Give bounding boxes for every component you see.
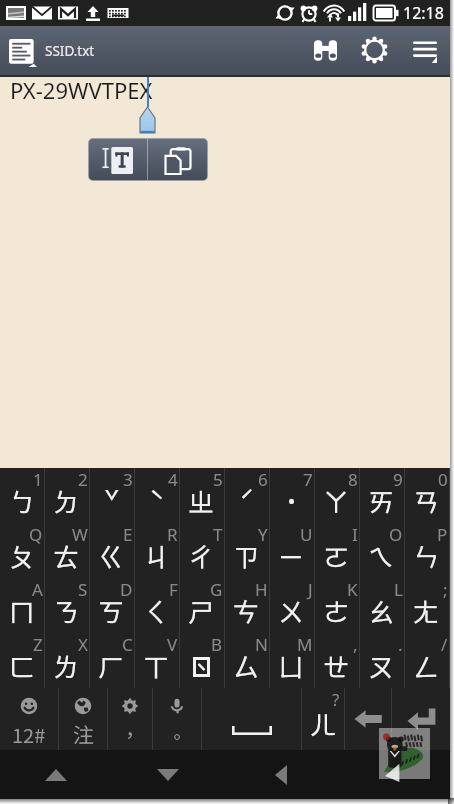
staticText: J [308, 578, 313, 601]
button[interactable]: 7 [269, 468, 314, 523]
staticText: ㄗ [233, 537, 260, 575]
button[interactable]: ? [302, 688, 344, 750]
button[interactable]: Select text [89, 139, 147, 180]
staticText: ; [443, 578, 448, 601]
button[interactable]: O [359, 523, 404, 578]
staticText: R [167, 523, 178, 546]
button[interactable]: Up [0, 750, 112, 799]
button[interactable]: 3 [89, 468, 134, 523]
staticText: P [437, 523, 448, 546]
button[interactable]: Enter [392, 688, 450, 750]
button[interactable]: Settings [108, 688, 152, 750]
button[interactable]: 4 [134, 468, 179, 523]
button[interactable]: 6 [224, 468, 269, 523]
button[interactable]: W [44, 523, 89, 578]
button[interactable]: ; [404, 578, 449, 633]
button[interactable]: Q [0, 523, 44, 578]
button[interactable]: V [134, 633, 179, 688]
staticText: V [167, 633, 178, 656]
staticText: ， [120, 720, 140, 749]
button[interactable]: J [269, 578, 314, 633]
button[interactable]: G [179, 578, 224, 633]
button[interactable]: . [359, 633, 404, 688]
button[interactable]: K [314, 578, 359, 633]
button[interactable]: / [404, 633, 449, 688]
button[interactable]: S [44, 578, 89, 633]
button[interactable]: Voice input [153, 688, 201, 750]
staticText: 12:18 [403, 2, 444, 24]
button[interactable]: I [314, 523, 359, 578]
button[interactable]: Backspace [345, 688, 391, 750]
button[interactable]: 2 [44, 468, 89, 523]
staticText: ㄝ [323, 647, 350, 685]
button[interactable]: 1 [0, 468, 44, 523]
button[interactable]: N [224, 633, 269, 688]
staticText: ㄜ [323, 592, 350, 630]
staticText: A [32, 578, 43, 601]
staticText: ㄍ [98, 537, 125, 575]
button[interactable]: R [134, 523, 179, 578]
staticText: ˊ [239, 482, 255, 520]
staticText: ㄨ [278, 592, 305, 630]
staticText: ㄔ [188, 537, 215, 575]
button[interactable]: 8 [314, 468, 359, 523]
button[interactable]: SSID.txt [8, 37, 99, 65]
staticText: 1 [33, 468, 43, 491]
staticText: S [78, 578, 88, 601]
staticText: Q [29, 523, 43, 546]
staticText: ? [332, 688, 340, 711]
button[interactable]: H [224, 578, 269, 633]
staticText: ㄈ [9, 647, 36, 685]
staticText: 注 [73, 719, 94, 749]
button[interactable]: Symbols [0, 688, 58, 750]
button[interactable]: P [404, 523, 449, 578]
staticText: M [297, 633, 313, 656]
button[interactable]: Input method [59, 688, 107, 750]
button[interactable]: , [314, 633, 359, 688]
button[interactable]: More options [402, 26, 448, 75]
button[interactable]: Y [224, 523, 269, 578]
button[interactable]: Paste [148, 139, 207, 180]
button[interactable]: M [269, 633, 314, 688]
button[interactable]: B [179, 633, 224, 688]
staticText: ㄘ [233, 592, 260, 630]
staticText: ㄌ [53, 647, 80, 685]
staticText: ㄋ [53, 592, 80, 630]
staticText: ㄓ [188, 482, 215, 520]
button[interactable]: 9 [359, 468, 404, 523]
staticText: ㄐ [143, 537, 170, 575]
button[interactable]: Settings [353, 26, 402, 75]
staticText: ˙ [285, 482, 299, 520]
button[interactable]: Space [202, 688, 301, 750]
staticText: W [72, 523, 88, 546]
staticText: ㄚ [323, 482, 350, 520]
staticText: ㄢ [413, 482, 440, 520]
button[interactable]: Z [0, 633, 44, 688]
button[interactable]: Down [112, 750, 224, 799]
staticText: 。 [168, 723, 186, 749]
staticText: 5 [213, 468, 223, 491]
staticText: ㄏ [98, 647, 125, 685]
button[interactable]: E [89, 523, 134, 578]
staticText: ㄊ [53, 537, 80, 575]
staticText: E [123, 523, 133, 546]
staticText: U [300, 523, 313, 546]
staticText: 0 [438, 468, 448, 491]
button[interactable]: 0 [404, 468, 449, 523]
button[interactable]: F [134, 578, 179, 633]
button[interactable]: Back [224, 750, 337, 799]
button[interactable]: Find [304, 26, 353, 75]
button[interactable]: 5 [179, 468, 224, 523]
button[interactable]: L [359, 578, 404, 633]
button[interactable]: D [89, 578, 134, 633]
staticText: ㄛ [323, 537, 350, 575]
button[interactable]: T [179, 523, 224, 578]
staticText: ㄕ [188, 592, 215, 630]
staticText: I [352, 523, 358, 546]
button[interactable]: X [44, 633, 89, 688]
button[interactable]: C [89, 633, 134, 688]
staticText: ㄉ [53, 482, 80, 520]
staticText: O [389, 523, 403, 546]
button[interactable]: U [269, 523, 314, 578]
button[interactable]: A [0, 578, 44, 633]
